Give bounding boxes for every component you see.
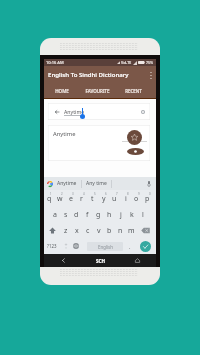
button[interactable]: Back xyxy=(48,103,150,120)
staticText: 2 xyxy=(61,192,63,196)
button[interactable]: 0 xyxy=(142,190,153,206)
staticText: i xyxy=(125,194,127,204)
staticText: t xyxy=(91,194,94,204)
staticText: HOME xyxy=(55,88,69,94)
staticText: Any time xyxy=(86,180,107,187)
staticText: English xyxy=(98,244,113,250)
button[interactable]: Voice input xyxy=(145,180,153,188)
staticText: w xyxy=(57,194,63,204)
staticText: l xyxy=(142,210,144,220)
button[interactable]: v xyxy=(93,222,104,238)
button[interactable]: 3 xyxy=(65,190,76,206)
staticText: Anytime xyxy=(53,130,76,138)
staticText: q xyxy=(47,194,52,204)
button[interactable]: a xyxy=(49,206,60,222)
staticText: f xyxy=(86,210,89,220)
staticText: 4 xyxy=(83,192,85,196)
button[interactable]: Back xyxy=(44,254,82,267)
button[interactable]: h xyxy=(104,206,115,222)
button[interactable]: x xyxy=(71,222,82,238)
button[interactable]: Any time xyxy=(86,180,107,187)
button[interactable]: f xyxy=(82,206,93,222)
button[interactable]: RECENT xyxy=(115,84,151,98)
staticText: 7 xyxy=(116,192,118,196)
button[interactable]: More options xyxy=(146,66,156,85)
staticText: y xyxy=(102,194,106,204)
staticText: English To Sindhi Dictionary xyxy=(48,70,129,78)
button[interactable]: Anytime xyxy=(57,180,77,187)
staticText: e xyxy=(69,194,73,204)
staticText: 1 xyxy=(50,192,52,196)
staticText: ?123 xyxy=(47,243,57,249)
staticText: SCH xyxy=(96,258,105,264)
staticText: d xyxy=(74,210,79,220)
staticText: s xyxy=(64,210,68,220)
staticText: 5 xyxy=(94,192,96,196)
button[interactable]: FAVOURITE xyxy=(79,84,115,98)
button[interactable]: 8 xyxy=(120,190,131,206)
button[interactable]: Recent apps xyxy=(82,254,119,267)
button[interactable]: b xyxy=(104,222,115,238)
button[interactable]: Pronounce xyxy=(127,148,144,155)
button[interactable]: Clear xyxy=(139,108,146,115)
staticText: 3 xyxy=(72,192,74,196)
button[interactable]: j xyxy=(115,206,126,222)
staticText: Anytime xyxy=(57,180,77,187)
button[interactable]: n xyxy=(115,222,126,238)
staticText: k xyxy=(130,210,134,220)
staticText: 0 xyxy=(149,192,151,196)
button[interactable]: c xyxy=(82,222,93,238)
staticText: o xyxy=(134,194,139,204)
staticText: 8 xyxy=(127,192,129,196)
button[interactable]: k xyxy=(126,206,137,222)
button[interactable]: Home xyxy=(119,254,156,267)
button[interactable]: HOME xyxy=(44,84,79,98)
button[interactable]: l xyxy=(137,206,148,222)
staticText: r xyxy=(80,194,83,204)
button[interactable]: Add to favourites xyxy=(127,130,142,145)
button[interactable]: m xyxy=(126,222,137,238)
staticText: 75% xyxy=(146,60,154,65)
staticText: b xyxy=(107,226,112,236)
staticText: a xyxy=(53,210,57,220)
staticText: j xyxy=(120,210,122,220)
button[interactable]: g xyxy=(93,206,104,222)
staticText: Anytime xyxy=(64,108,85,115)
button[interactable]: Shift xyxy=(44,222,60,238)
button[interactable]: . xyxy=(125,238,135,254)
button[interactable]: 5 xyxy=(87,190,98,206)
staticText: v xyxy=(97,226,101,236)
staticText: n xyxy=(118,226,123,236)
staticText: u xyxy=(112,194,117,204)
staticText: x xyxy=(75,226,79,236)
button[interactable]: 9 xyxy=(131,190,142,206)
staticText: . xyxy=(129,243,131,250)
staticText: z xyxy=(64,226,68,236)
button[interactable]: English xyxy=(87,242,123,251)
button[interactable]: s xyxy=(60,206,71,222)
button[interactable]: 4 xyxy=(76,190,87,206)
button[interactable]: Enter xyxy=(140,241,151,252)
staticText: m xyxy=(128,226,135,236)
button[interactable]: Backspace xyxy=(137,222,153,238)
staticText: g xyxy=(96,210,101,220)
staticText: RECENT xyxy=(125,88,142,94)
staticText: 6 xyxy=(105,192,107,196)
staticText: VoLTE xyxy=(121,60,132,65)
button[interactable]: d xyxy=(71,206,82,222)
other: Back xyxy=(55,110,59,114)
button[interactable]: z xyxy=(60,222,71,238)
staticText: p xyxy=(145,194,150,204)
staticText: FAVOURITE xyxy=(85,88,110,94)
button[interactable]: 2 xyxy=(54,190,65,206)
button[interactable]: Anytime xyxy=(48,125,150,161)
button[interactable]: 6 xyxy=(98,190,109,206)
staticText: 9 xyxy=(138,192,140,196)
button[interactable]: Emoji xyxy=(61,238,71,254)
button[interactable]: ?123 xyxy=(45,238,58,254)
button[interactable]: 7 xyxy=(109,190,120,206)
button[interactable]: Change language xyxy=(71,238,81,254)
button[interactable]: 1 xyxy=(44,190,54,206)
staticText: h xyxy=(107,210,112,220)
staticText: c xyxy=(86,226,90,236)
